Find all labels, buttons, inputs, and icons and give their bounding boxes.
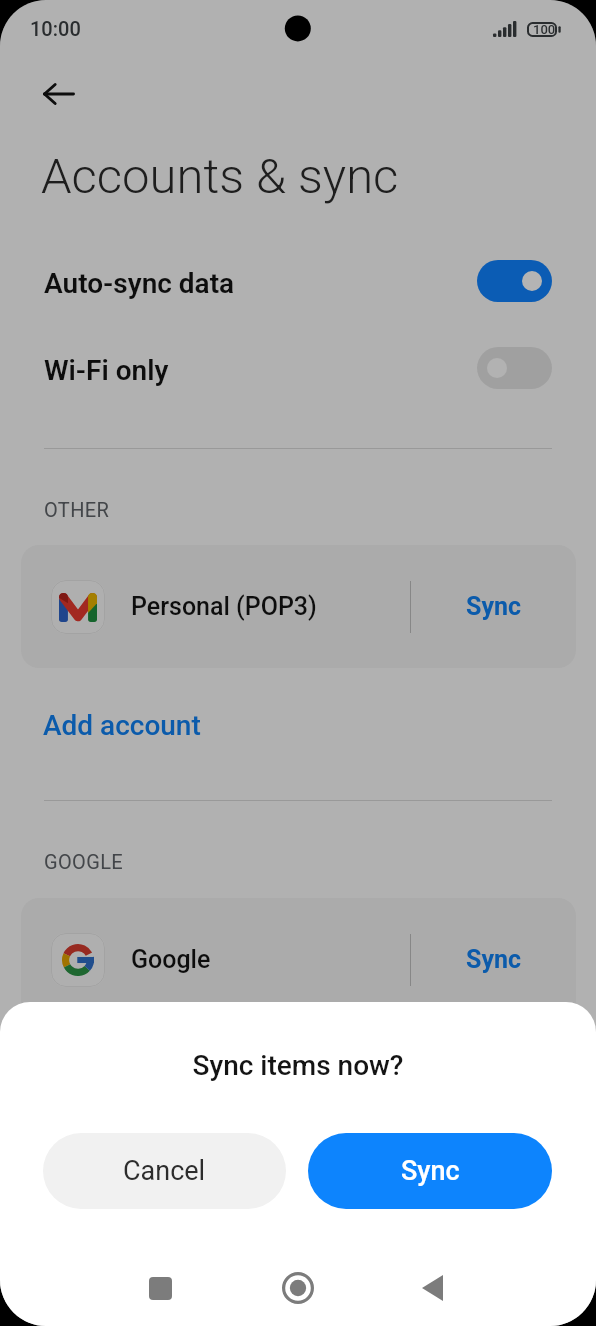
button[interactable]: Add account (0, 700, 596, 751)
staticText: Cancel (123, 1155, 206, 1187)
staticText: Sync (401, 1155, 460, 1187)
button[interactable]: Google (21, 898, 576, 1021)
button[interactable]: Personal (POP3) (21, 545, 576, 668)
staticText: Sync items now? (0, 1049, 596, 1082)
button[interactable]: Cancel (43, 1133, 286, 1209)
staticText: Wi-Fi only (44, 354, 169, 387)
button[interactable]: Wi-Fi only (0, 342, 596, 398)
staticText: Sync (466, 945, 522, 974)
button[interactable]: Recent apps (122, 1250, 198, 1326)
staticText: Accounts & sync (41, 148, 399, 205)
button[interactable]: Back (35, 70, 83, 118)
staticText: Google (131, 945, 211, 974)
staticText: Sync (466, 592, 522, 621)
button[interactable]: Sync (411, 898, 576, 1021)
button[interactable]: Home (260, 1250, 336, 1326)
button[interactable]: Sync (411, 545, 576, 668)
staticText: GOOGLE (44, 850, 124, 873)
button[interactable]: Sync (308, 1133, 552, 1209)
staticText: Auto-sync data (44, 267, 235, 300)
button[interactable]: Back (394, 1250, 470, 1326)
staticText: Add account (43, 709, 201, 742)
button[interactable]: Auto-sync data (0, 255, 596, 311)
staticText: OTHER (44, 498, 110, 521)
staticText: 100 (533, 22, 556, 37)
staticText: Personal (POP3) (131, 592, 317, 621)
staticText: 10:00 (30, 17, 81, 40)
